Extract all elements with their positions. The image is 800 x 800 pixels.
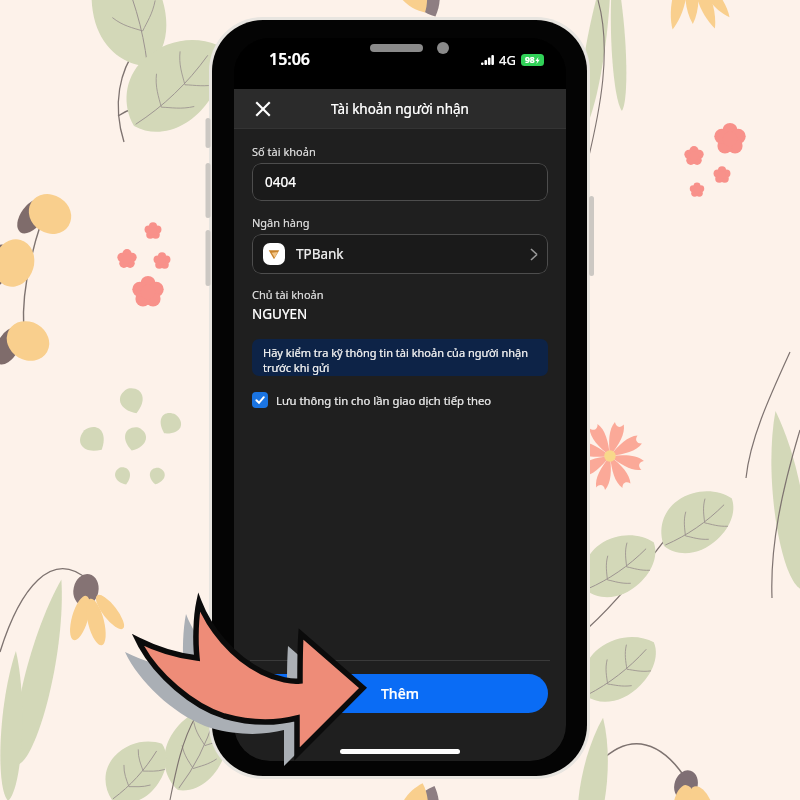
button[interactable]: Close [246,89,280,129]
staticText: 0404 [265,173,296,191]
staticText: Thêm [381,684,419,703]
staticText: TPBank [296,245,344,263]
button[interactable]: TPBank [252,234,548,274]
staticText: Chủ tài khoản [252,287,324,302]
staticText: Tài khoản người nhận [331,100,469,118]
staticText: 4G [499,51,516,69]
button[interactable]: Thêm [252,674,548,713]
button[interactable]: Lưu thông tin cho lần giao dịch tiếp the… [252,391,492,409]
staticText: Ngân hàng [252,215,310,230]
staticText: 98 [525,54,535,66]
staticText: NGUYEN [252,305,308,323]
staticText: Lưu thông tin cho lần giao dịch tiếp the… [276,393,492,408]
staticText: 15:06 [269,48,311,70]
button[interactable]: 0404 [252,163,548,201]
staticText: Số tài khoản [252,144,316,159]
staticText: Hãy kiểm tra kỹ thông tin tài khoản của … [263,345,537,375]
